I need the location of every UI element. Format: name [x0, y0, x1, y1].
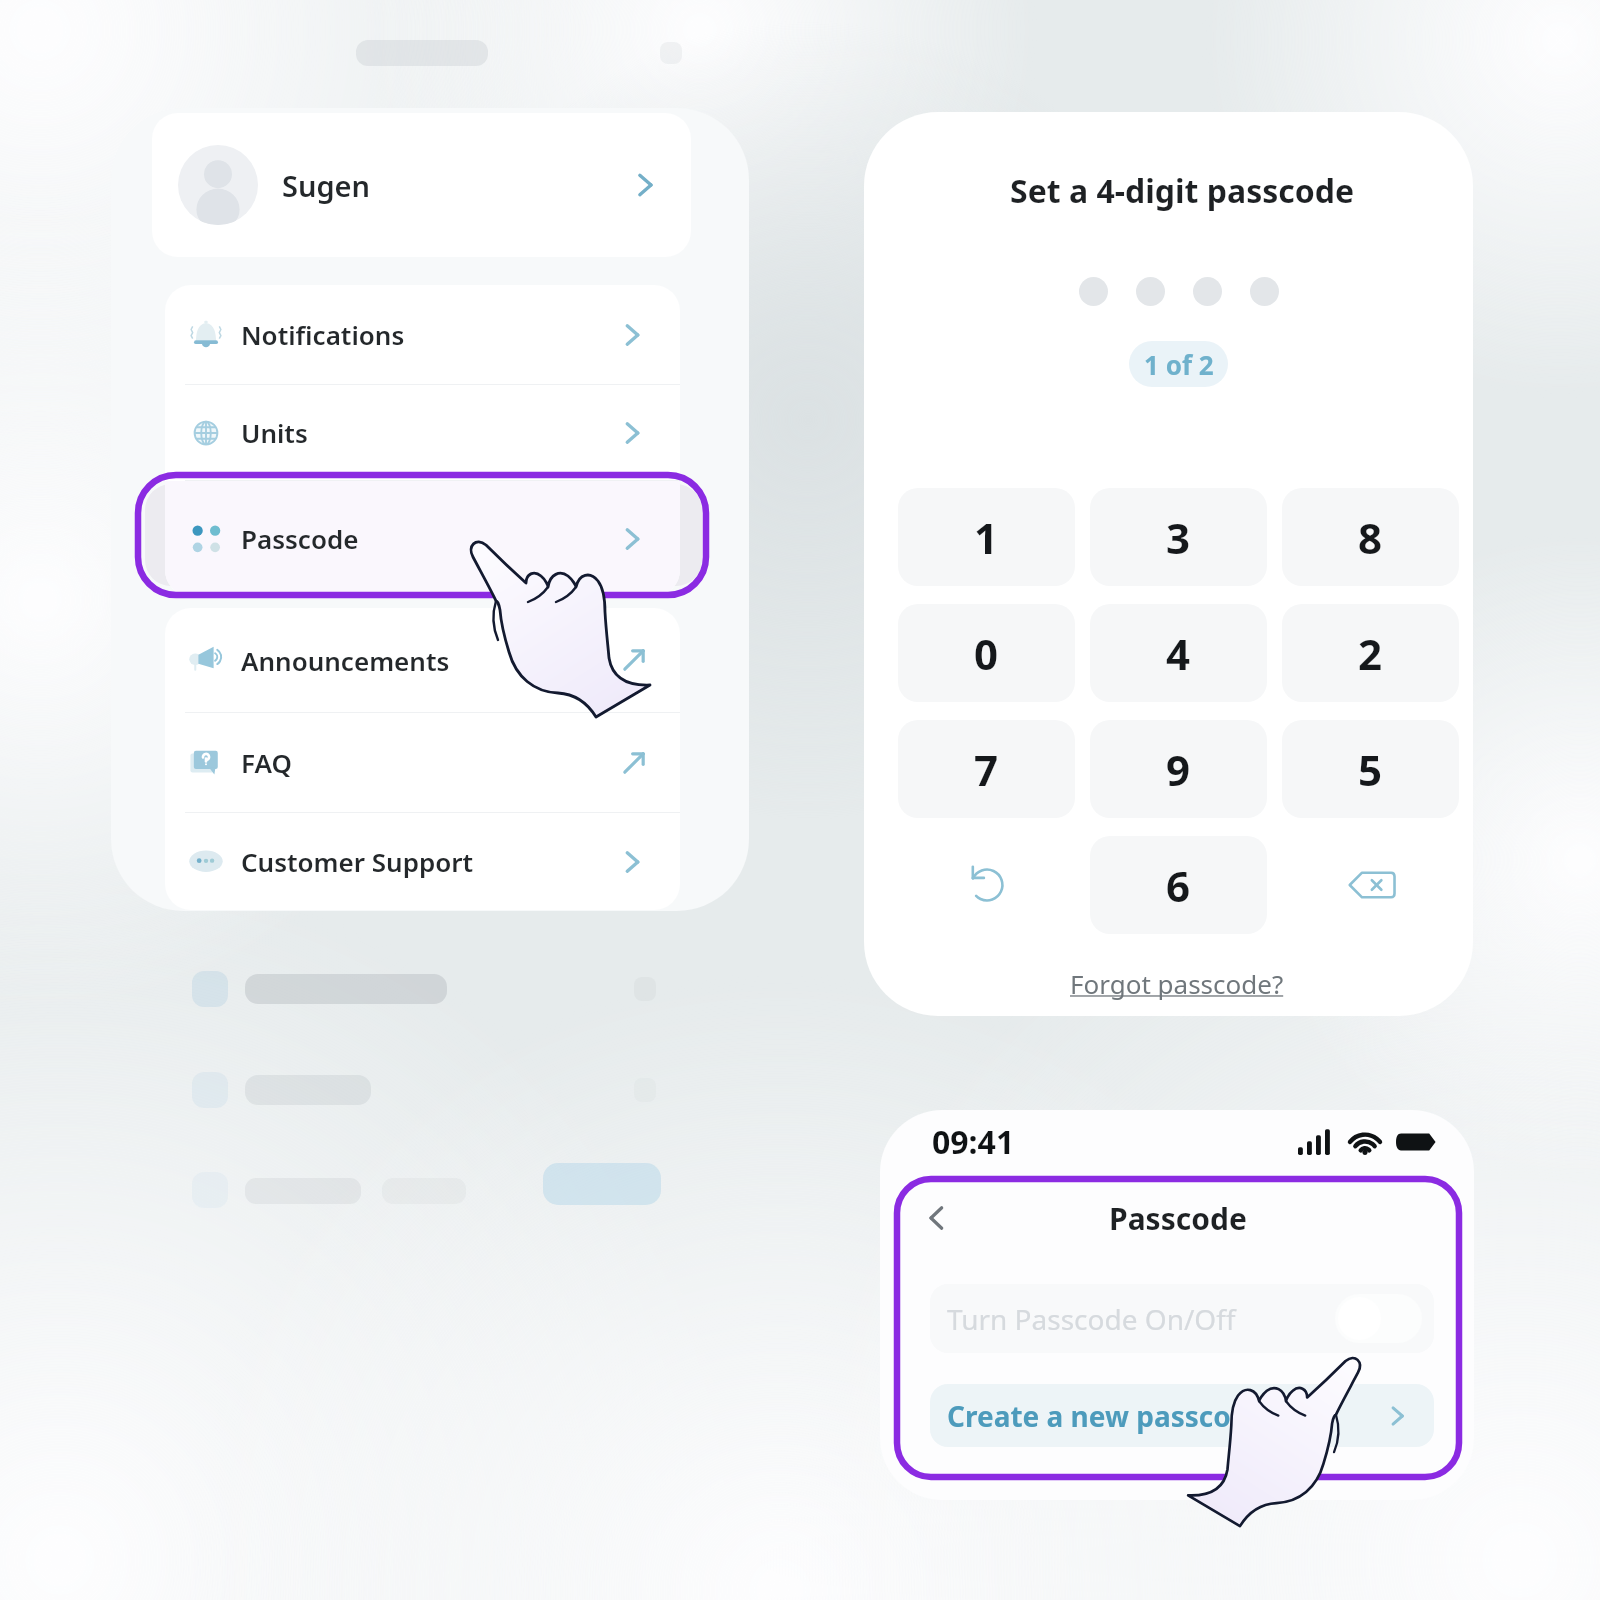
button[interactable]: Notifications [165, 285, 680, 384]
button[interactable]: 8 [1282, 488, 1459, 586]
staticText: Announcements [241, 643, 450, 678]
button[interactable]: Sugen [152, 113, 691, 257]
staticText: Notifications [241, 317, 405, 352]
staticText: Create a new passcode [947, 1397, 1266, 1435]
staticText: Set a 4-digit passcode [1010, 169, 1355, 213]
button[interactable]: FAQ [165, 713, 680, 812]
button[interactable]: 1 [898, 488, 1075, 586]
staticText: 4 [1166, 625, 1191, 682]
staticText: 1 of 2 [1144, 347, 1214, 382]
staticText: 1 [974, 509, 999, 566]
button[interactable]: 4 [1090, 604, 1267, 702]
button[interactable]: Announcements [165, 608, 680, 712]
button[interactable]: Units [165, 385, 680, 480]
staticText: Turn Passcode On/Off [947, 1300, 1236, 1338]
staticText: 5 [1358, 741, 1383, 798]
staticText: 3 [1166, 509, 1191, 566]
button[interactable]: 3 [1090, 488, 1267, 586]
staticText: Units [241, 415, 308, 450]
staticText: 2 [1358, 625, 1383, 682]
staticText: Passcode [241, 521, 359, 556]
staticText: 6 [1166, 857, 1191, 914]
staticText: 09:41 [932, 1120, 1015, 1164]
button[interactable]: Turn Passcode On/Off [930, 1284, 1434, 1353]
staticText: Sugen [282, 166, 371, 205]
button[interactable]: Undo [898, 836, 1075, 934]
staticText: Customer Support [241, 844, 474, 879]
button[interactable]: Customer Support [165, 813, 680, 910]
staticText: 0 [974, 625, 999, 682]
button[interactable]: Forgot passcode? [1064, 960, 1290, 1007]
staticText: 9 [1166, 741, 1191, 798]
button[interactable]: Delete [1282, 836, 1459, 934]
staticText: 8 [1358, 509, 1383, 566]
button[interactable]: 7 [898, 720, 1075, 818]
staticText: Forgot passcode? [1070, 966, 1284, 1001]
button[interactable]: 5 [1282, 720, 1459, 818]
staticText: 7 [974, 741, 999, 798]
button[interactable]: Passcode [165, 481, 680, 596]
button[interactable]: Back [912, 1195, 958, 1241]
staticText: Passcode [1109, 1198, 1247, 1239]
button[interactable]: 2 [1282, 604, 1459, 702]
button[interactable]: Create a new passcode [930, 1384, 1434, 1447]
button[interactable]: 6 [1090, 836, 1267, 934]
staticText: FAQ [241, 745, 292, 780]
button[interactable]: 9 [1090, 720, 1267, 818]
button[interactable]: 0 [898, 604, 1075, 702]
